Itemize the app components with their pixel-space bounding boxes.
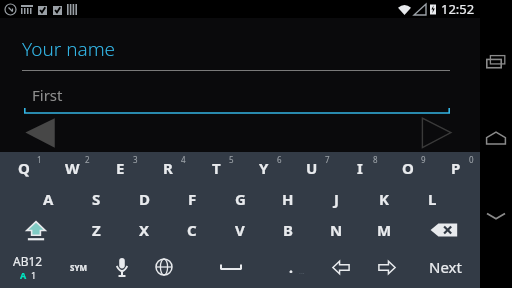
staticText: L bbox=[428, 189, 437, 209]
staticText: S bbox=[92, 189, 101, 209]
staticText: U bbox=[306, 158, 318, 178]
staticText: AB12 bbox=[13, 253, 43, 269]
button[interactable]: B bbox=[264, 214, 312, 246]
button[interactable]: C bbox=[168, 214, 216, 246]
staticText: Next bbox=[429, 257, 462, 277]
button[interactable]: Next bbox=[410, 246, 480, 288]
staticText: 1 bbox=[37, 154, 42, 165]
button[interactable]: Next bbox=[414, 116, 456, 152]
staticText: W bbox=[65, 158, 80, 178]
button[interactable]: Backspace bbox=[408, 214, 480, 246]
button[interactable]: Z bbox=[72, 214, 120, 246]
staticText: 12:52 bbox=[441, 0, 475, 18]
button[interactable]: K bbox=[360, 184, 408, 214]
staticText: Y bbox=[259, 158, 269, 178]
button[interactable]: Y bbox=[240, 152, 288, 184]
button[interactable]: P bbox=[432, 152, 480, 184]
staticText: E bbox=[116, 158, 125, 178]
staticText: A bbox=[43, 189, 54, 209]
staticText: J bbox=[334, 189, 339, 209]
button[interactable]: Move right bbox=[364, 246, 410, 288]
button[interactable]: T bbox=[192, 152, 240, 184]
button[interactable]: Shift bbox=[0, 214, 72, 246]
staticText: 9 bbox=[421, 154, 426, 165]
staticText: SYM bbox=[70, 262, 87, 273]
staticText: B bbox=[283, 220, 293, 240]
staticText: C bbox=[187, 220, 197, 240]
staticText: T bbox=[212, 158, 221, 178]
button[interactable]: Home bbox=[480, 122, 512, 154]
staticText: Q bbox=[18, 158, 30, 178]
staticText: R bbox=[163, 158, 173, 178]
button[interactable]: H bbox=[264, 184, 312, 214]
button[interactable]: X bbox=[120, 214, 168, 246]
button[interactable]: G bbox=[216, 184, 264, 214]
button[interactable]: N bbox=[312, 214, 360, 246]
staticText: 7 bbox=[325, 154, 330, 165]
button[interactable]: . bbox=[276, 246, 318, 288]
staticText: 5 bbox=[229, 154, 234, 165]
staticText: X bbox=[139, 220, 150, 240]
staticText: 1 bbox=[31, 269, 37, 281]
staticText: 0 bbox=[469, 154, 474, 165]
staticText: H bbox=[282, 189, 294, 209]
staticText: I bbox=[357, 158, 363, 178]
button[interactable]: Previous bbox=[22, 116, 64, 152]
button[interactable]: I bbox=[336, 152, 384, 184]
staticText: ... bbox=[299, 267, 305, 277]
button[interactable]: F bbox=[168, 184, 216, 214]
button[interactable]: U bbox=[288, 152, 336, 184]
button[interactable]: L bbox=[408, 184, 456, 214]
button[interactable]: Recents bbox=[480, 46, 512, 78]
staticText: 6 bbox=[277, 154, 282, 165]
button[interactable]: A bbox=[24, 184, 72, 214]
staticText: P bbox=[451, 158, 461, 178]
staticText: O bbox=[402, 158, 414, 178]
button[interactable]: Space bbox=[185, 246, 276, 288]
button[interactable]: Voice input bbox=[101, 246, 143, 288]
button[interactable]: E bbox=[96, 152, 144, 184]
button[interactable]: AB12 bbox=[0, 246, 55, 288]
button[interactable]: O bbox=[384, 152, 432, 184]
button[interactable]: J bbox=[312, 184, 360, 214]
button[interactable]: R bbox=[144, 152, 192, 184]
staticText: . bbox=[289, 258, 293, 277]
staticText: V bbox=[235, 220, 245, 240]
staticText: First bbox=[32, 85, 63, 105]
staticText: 8 bbox=[373, 154, 378, 165]
staticText: Your name bbox=[22, 36, 116, 62]
staticText: 2 bbox=[85, 154, 90, 165]
button[interactable]: W bbox=[48, 152, 96, 184]
staticText: 3 bbox=[133, 154, 138, 165]
button[interactable]: Change language bbox=[143, 246, 185, 288]
staticText: G bbox=[235, 189, 246, 209]
staticText: K bbox=[379, 189, 389, 209]
button[interactable]: Q bbox=[0, 152, 48, 184]
staticText: 4 bbox=[181, 154, 186, 165]
staticText: D bbox=[139, 189, 150, 209]
button[interactable]: Move left bbox=[318, 246, 364, 288]
staticText: A bbox=[20, 269, 27, 281]
button[interactable]: Hide keyboard bbox=[480, 200, 512, 232]
button[interactable]: D bbox=[120, 184, 168, 214]
staticText: F bbox=[188, 189, 197, 209]
button[interactable]: M bbox=[360, 214, 408, 246]
button[interactable]: V bbox=[216, 214, 264, 246]
staticText: M bbox=[377, 220, 392, 240]
staticText: N bbox=[330, 220, 343, 240]
button[interactable]: SYM bbox=[55, 246, 101, 288]
button[interactable]: S bbox=[72, 184, 120, 214]
staticText: Z bbox=[92, 220, 101, 240]
